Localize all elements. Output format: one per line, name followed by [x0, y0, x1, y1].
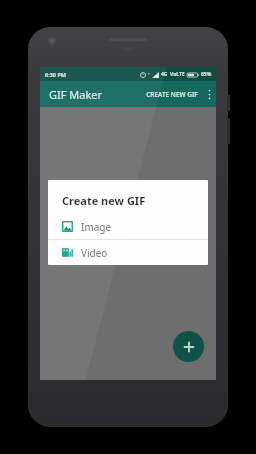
button[interactable]: Create new GIF: [173, 331, 204, 362]
staticText: Image: [81, 220, 112, 234]
staticText: 65%: [201, 71, 212, 78]
button[interactable]: CREATE NEW GIF: [142, 85, 202, 104]
staticText: VoLTE: [170, 71, 185, 78]
button[interactable]: Image: [48, 214, 208, 239]
button[interactable]: Video: [48, 240, 208, 265]
staticText: •: [148, 71, 150, 78]
staticText: Create new GIF: [62, 193, 146, 208]
staticText: 6:30 PM: [45, 71, 67, 78]
staticText: GIF Maker: [49, 87, 103, 102]
staticText: CREATE NEW GIF: [146, 90, 198, 99]
staticText: Video: [81, 246, 108, 260]
button[interactable]: More options: [202, 81, 216, 107]
staticText: 4G: [161, 71, 168, 78]
